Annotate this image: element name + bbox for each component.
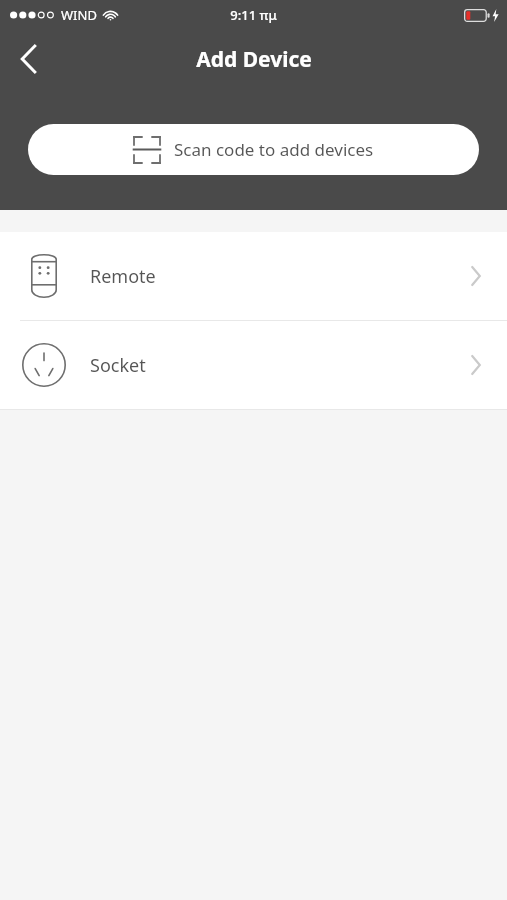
staticText: Remote [90, 264, 156, 289]
button[interactable]: Socket [0, 321, 507, 409]
staticText: Socket [90, 353, 146, 378]
staticText: 9:11 πμ [230, 6, 277, 24]
staticText: WIND [61, 6, 97, 24]
staticText: Scan code to add devices [174, 138, 374, 161]
button[interactable]: Remote [0, 232, 507, 320]
staticText: Add Device [196, 45, 312, 74]
button[interactable]: Back [0, 31, 56, 87]
button[interactable]: Scan code to add devices [28, 124, 479, 175]
